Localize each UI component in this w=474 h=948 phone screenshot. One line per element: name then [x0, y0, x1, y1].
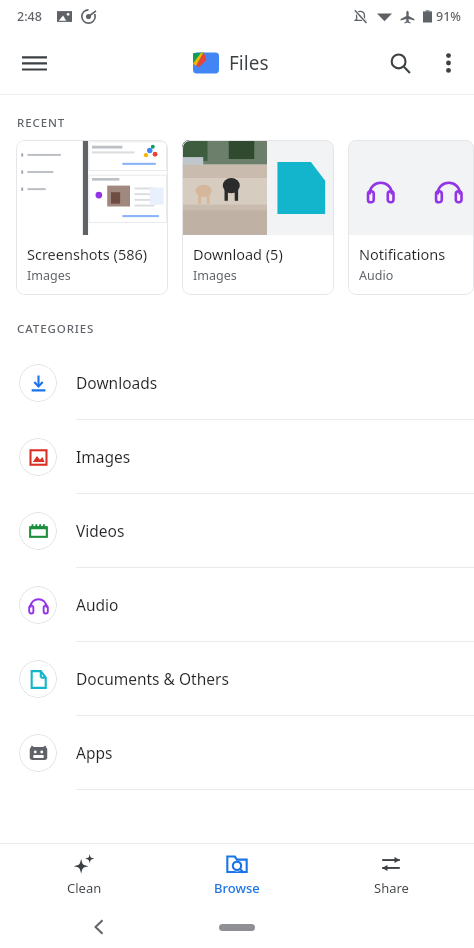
button[interactable]: Apps [0, 716, 474, 790]
staticText: Apps [76, 742, 113, 763]
staticText: 2:48 [17, 8, 42, 25]
staticText: Images [193, 267, 237, 284]
staticText: Screenshots (586) [27, 244, 148, 264]
button[interactable]: Documents & Others [0, 642, 474, 716]
staticText: Downloads [76, 372, 158, 393]
staticText: CATEGORIES [17, 321, 95, 337]
button[interactable]: Downloads [0, 346, 474, 420]
staticText: Notifications (12) [359, 244, 470, 264]
staticText: Clean [67, 879, 102, 897]
button[interactable]: More options [424, 39, 472, 87]
staticText: RECENT [17, 115, 66, 131]
staticText: Browse [214, 879, 260, 897]
staticText: Videos [76, 520, 125, 541]
button[interactable]: Notifications (12) [348, 140, 474, 295]
staticText: Share [374, 879, 409, 897]
button[interactable]: Screenshots (586) [16, 140, 168, 295]
staticText: Files [229, 50, 269, 76]
button[interactable]: Search [376, 39, 424, 87]
button[interactable]: Share [321, 844, 461, 906]
button[interactable]: Videos [0, 494, 474, 568]
staticText: 91% [436, 8, 461, 25]
button[interactable]: Audio [0, 568, 474, 642]
button[interactable]: Download (5) [182, 140, 334, 295]
staticText: Download (5) [193, 244, 283, 264]
staticText: Documents & Others [76, 668, 229, 689]
button[interactable]: Browse [167, 844, 307, 906]
staticText: Images [27, 267, 71, 284]
button[interactable]: Images [0, 420, 474, 494]
staticText: Audio [76, 594, 119, 615]
staticText: Audio [359, 267, 394, 284]
button[interactable]: Clean [14, 844, 154, 906]
staticText: Images [76, 446, 131, 467]
button[interactable]: Open navigation menu [10, 39, 58, 87]
